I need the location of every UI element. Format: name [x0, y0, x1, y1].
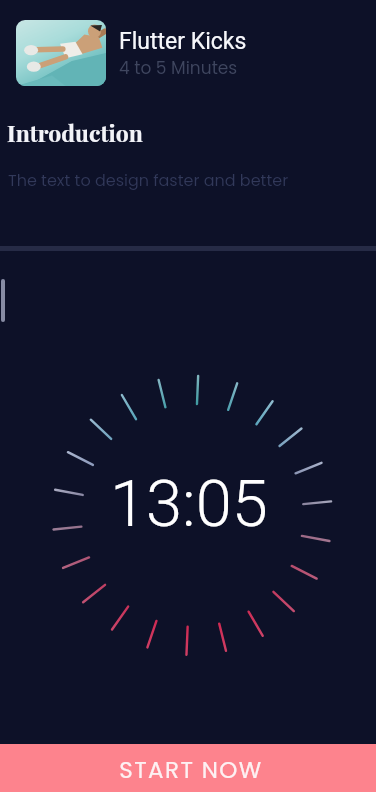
staticText: The text to design faster and better	[8, 169, 289, 191]
staticText: Introduction	[7, 117, 143, 148]
button[interactable]: Exercise preview	[16, 20, 106, 86]
button[interactable]: START NOW	[0, 744, 376, 792]
staticText: Flutter Kicks	[119, 28, 247, 55]
staticText: 13:05	[110, 466, 268, 542]
staticText: START NOW	[119, 754, 263, 786]
staticText: 4 to 5 Minutes	[119, 56, 238, 80]
